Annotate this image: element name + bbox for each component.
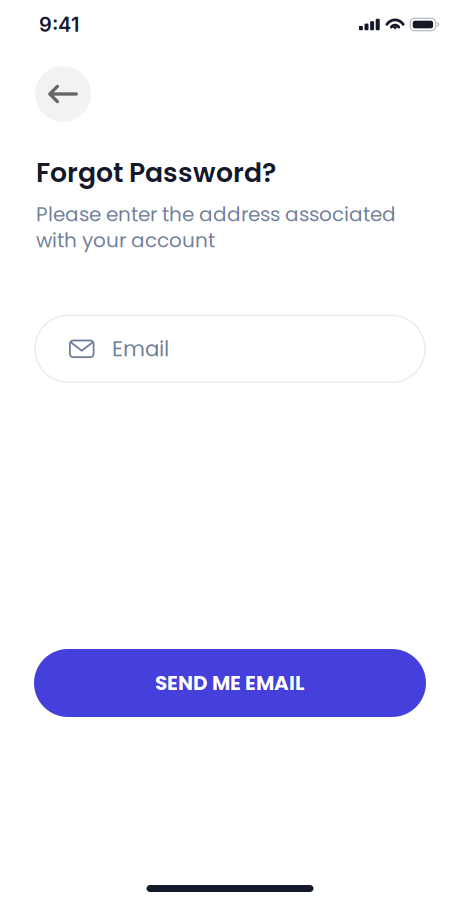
staticText: 9:41 — [39, 12, 79, 37]
button[interactable]: SEND ME EMAIL — [34, 649, 426, 717]
staticText: Forgot Password? — [36, 154, 276, 191]
button[interactable]: Back — [35, 66, 91, 122]
staticText: Please enter the address associated with… — [36, 200, 396, 254]
staticText: SEND ME EMAIL — [155, 669, 305, 697]
staticText: Email — [112, 334, 169, 364]
